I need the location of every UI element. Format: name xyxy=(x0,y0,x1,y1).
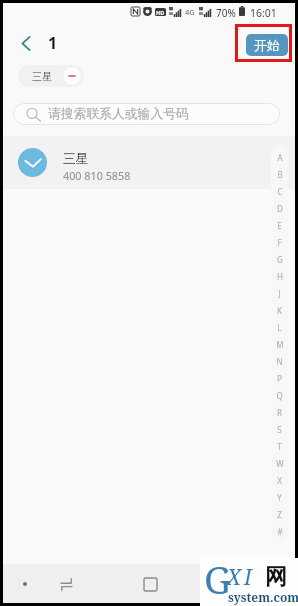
staticText: C xyxy=(277,186,283,197)
staticText: G xyxy=(204,553,232,601)
button[interactable]: 请搜索联系人或输入号码 xyxy=(13,103,280,125)
button[interactable]: 三星 xyxy=(18,65,84,87)
staticText: F xyxy=(277,237,282,248)
staticText: Z xyxy=(277,509,282,520)
staticText: I xyxy=(244,563,252,592)
button[interactable]: 开始 xyxy=(246,34,288,56)
staticText: 请搜索联系人或输入号码 xyxy=(48,106,189,122)
button[interactable]: Back xyxy=(6,23,46,63)
staticText: M xyxy=(276,339,284,350)
button[interactable]: Show all apps xyxy=(12,571,38,597)
staticText: W xyxy=(276,458,284,469)
staticText: # xyxy=(277,526,283,537)
button[interactable]: 1 xyxy=(48,32,58,54)
button[interactable]: 三星 xyxy=(3,136,295,189)
staticText: system.com xyxy=(228,589,298,605)
staticText: K xyxy=(277,305,282,316)
staticText: 网 xyxy=(265,563,287,591)
staticText: H xyxy=(277,271,283,282)
staticText: G xyxy=(277,254,283,265)
staticText: 三星 xyxy=(63,151,89,167)
button[interactable]: Recent apps xyxy=(53,571,79,597)
staticText: 开始 xyxy=(254,37,280,53)
staticText: 1 xyxy=(48,32,58,54)
staticText: L xyxy=(277,322,282,333)
staticText: J xyxy=(278,288,281,299)
staticText: 70% xyxy=(216,6,236,20)
staticText: S xyxy=(277,424,282,435)
staticText: Y xyxy=(277,492,282,503)
staticText: 16:01 xyxy=(250,6,277,20)
staticText: R xyxy=(277,407,282,418)
staticText: 4G xyxy=(185,7,195,17)
staticText: 400 810 5858 xyxy=(63,168,131,183)
button[interactable]: Home xyxy=(137,571,163,597)
button[interactable]: Alphabet index xyxy=(271,145,288,544)
staticText: E xyxy=(277,220,282,231)
staticText: 三星 xyxy=(32,70,52,83)
staticText: N xyxy=(276,356,283,367)
staticText: B xyxy=(277,169,283,180)
staticText: HD xyxy=(156,9,165,16)
staticText: D xyxy=(277,203,283,214)
staticText: Q xyxy=(276,390,283,401)
staticText: T xyxy=(277,441,282,452)
staticText: X xyxy=(227,563,241,592)
staticText: X xyxy=(277,475,282,486)
staticText: A xyxy=(277,152,283,163)
staticText: P xyxy=(277,373,282,384)
